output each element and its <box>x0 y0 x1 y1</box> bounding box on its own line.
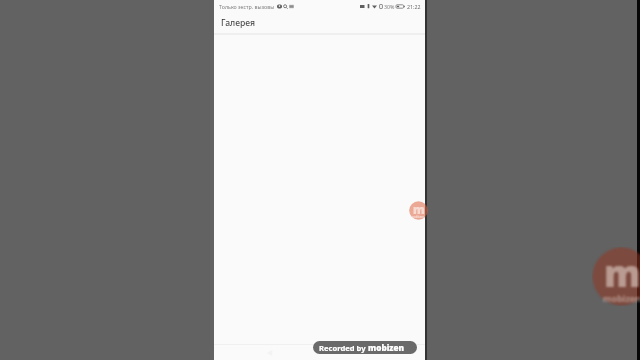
staticText: Галерея <box>221 17 256 29</box>
staticText: mobizen <box>368 342 405 353</box>
staticText: Recorded by <box>319 343 368 353</box>
staticText: mobizen <box>412 215 425 218</box>
staticText: mobizen <box>603 293 640 302</box>
staticText: m <box>604 248 640 298</box>
button[interactable]: Recorded by <box>313 341 417 354</box>
staticText: Только экстр. вызовы <box>219 3 275 10</box>
staticText: 21:22 <box>407 3 421 10</box>
staticText: m <box>413 201 425 217</box>
staticText: 30% <box>384 3 395 10</box>
